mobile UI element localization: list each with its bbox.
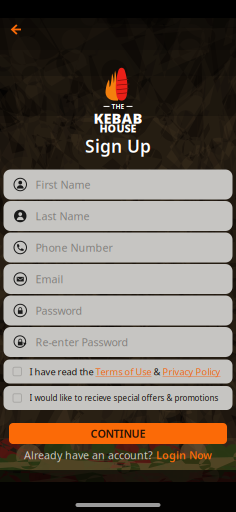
button[interactable]: Email [3,264,232,294]
button[interactable]: I would like to recieve special offers &… [3,386,232,410]
staticText: HOUSE [99,121,136,135]
staticText: Last Name [35,209,89,223]
staticText: Re-enter Password [35,335,128,349]
staticText: Login Now [156,448,212,462]
button[interactable]: Password [3,295,232,325]
staticText: Already have an account? [24,448,153,462]
button[interactable]: Re-enter Password [3,327,232,357]
staticText: Terms of Use [95,365,151,378]
staticText: Email [35,272,63,286]
staticText: I would like to recieve special offers &… [29,393,218,403]
button[interactable]: Back [5,18,27,41]
button[interactable]: I have read the [3,359,232,383]
button[interactable]: First Name [3,169,232,199]
staticText: Password [35,303,82,318]
staticText: KEBAB [93,108,142,128]
staticText: Sign Up [85,134,151,157]
staticText: THE [111,102,124,111]
button[interactable]: CONTINUE [9,423,227,444]
button[interactable]: Last Name [3,201,232,231]
staticText: CONTINUE [90,426,145,441]
staticText: Phone Number [35,240,112,255]
staticText: I have read the [29,365,95,378]
staticText: First Name [35,177,90,192]
button[interactable]: Already have an account? [0,448,236,462]
staticText: Privacy Policy [162,365,220,378]
button[interactable]: Phone Number [3,232,232,262]
staticText: & [151,365,162,378]
